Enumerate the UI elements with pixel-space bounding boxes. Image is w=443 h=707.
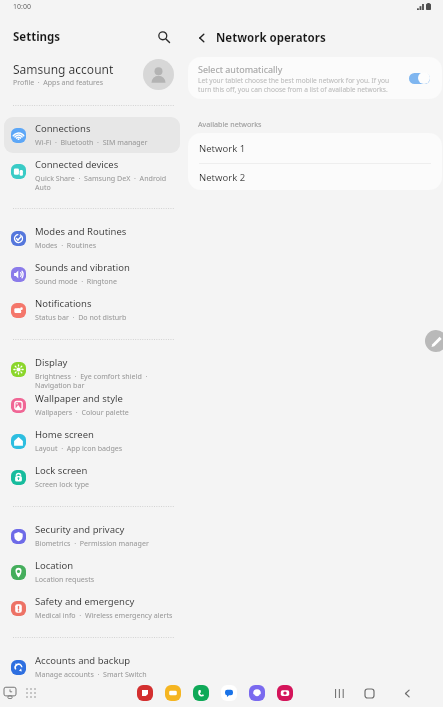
button[interactable]: Network 1 bbox=[188, 133, 442, 163]
button[interactable]: Camera bbox=[277, 685, 293, 701]
button[interactable]: Network 2 bbox=[188, 164, 442, 190]
staticText: Modes and Routines bbox=[35, 225, 127, 238]
button[interactable]: Lock screen bbox=[4, 459, 180, 495]
staticText: Let your tablet choose the best mobile n… bbox=[198, 76, 402, 94]
button[interactable]: Phone bbox=[193, 685, 209, 701]
staticText: Network 2 bbox=[199, 171, 246, 184]
staticText: Sound mode · Ringtone bbox=[35, 276, 117, 286]
button[interactable]: Edit bbox=[425, 330, 443, 352]
staticText: Settings bbox=[13, 29, 61, 45]
staticText: Notifications bbox=[35, 297, 92, 310]
staticText: Home screen bbox=[35, 428, 94, 441]
staticText: Location requests bbox=[35, 574, 95, 584]
staticText: Medical info · Wireless emergency alerts bbox=[35, 610, 173, 620]
staticText: Brightness · Eye comfort shield · Naviga… bbox=[35, 371, 174, 391]
button[interactable]: Location bbox=[4, 554, 180, 590]
button[interactable]: Display bbox=[4, 351, 180, 387]
button[interactable]: Accounts and backup bbox=[4, 649, 180, 685]
staticText: 10:00 bbox=[13, 2, 31, 12]
staticText: Accounts and backup bbox=[35, 654, 131, 667]
staticText: Status bar · Do not disturb bbox=[35, 312, 127, 322]
button[interactable]: All apps bbox=[22, 684, 40, 702]
staticText: Layout · App icon badges bbox=[35, 443, 123, 453]
button[interactable]: Messages bbox=[221, 685, 237, 701]
staticText: Network 1 bbox=[199, 142, 246, 155]
staticText: Profile · Apps and features bbox=[13, 78, 104, 88]
staticText: Wallpapers · Colour palette bbox=[35, 407, 129, 417]
staticText: Modes · Routines bbox=[35, 240, 97, 250]
button[interactable]: Wallpaper and style bbox=[4, 387, 180, 423]
staticText: Samsung account bbox=[13, 61, 114, 77]
staticText: Quick Share · Samsung DeX · Android Auto bbox=[35, 173, 174, 193]
button[interactable]: Samsung account bbox=[0, 54, 187, 94]
staticText: Select automatically bbox=[198, 63, 283, 75]
staticText: Wi-Fi · Bluetooth · SIM manager bbox=[35, 137, 148, 147]
staticText: Display bbox=[35, 356, 68, 369]
button[interactable]: Home bbox=[359, 683, 379, 703]
button[interactable]: My Files bbox=[165, 685, 181, 701]
button[interactable]: Samsung Notes bbox=[137, 685, 153, 701]
staticText: Manage accounts · Smart Switch bbox=[35, 669, 147, 679]
staticText: Security and privacy bbox=[35, 523, 125, 536]
staticText: Location bbox=[35, 559, 74, 572]
button[interactable]: Sounds and vibration bbox=[4, 256, 180, 292]
button[interactable]: Select automatically toggle bbox=[409, 72, 430, 84]
staticText: Available networks bbox=[198, 119, 262, 129]
staticText: Sounds and vibration bbox=[35, 261, 130, 274]
button[interactable]: Modes and Routines bbox=[4, 220, 180, 256]
staticText: Network operators bbox=[216, 30, 326, 46]
button[interactable]: Connected devices bbox=[4, 153, 180, 197]
staticText: Lock screen bbox=[35, 464, 88, 477]
staticText: Wallpaper and style bbox=[35, 392, 123, 405]
button[interactable]: Recents bbox=[329, 683, 349, 703]
button[interactable]: Connections bbox=[4, 117, 180, 153]
button[interactable]: Back bbox=[397, 683, 417, 703]
button[interactable]: Notifications bbox=[4, 292, 180, 328]
button[interactable]: Security and privacy bbox=[4, 518, 180, 554]
button[interactable]: Search bbox=[155, 28, 173, 46]
button[interactable]: Internet bbox=[249, 685, 265, 701]
staticText: Connected devices bbox=[35, 158, 119, 171]
button[interactable]: Select automatically bbox=[188, 57, 442, 99]
button[interactable]: Home screen bbox=[4, 423, 180, 459]
button[interactable]: Recent apps bbox=[1, 684, 19, 702]
staticText: Biometrics · Permission manager bbox=[35, 538, 149, 548]
staticText: Connections bbox=[35, 122, 91, 135]
staticText: Screen lock type bbox=[35, 479, 90, 489]
button[interactable]: Safety and emergency bbox=[4, 590, 180, 626]
button[interactable]: Back bbox=[193, 29, 211, 47]
staticText: Safety and emergency bbox=[35, 595, 135, 608]
